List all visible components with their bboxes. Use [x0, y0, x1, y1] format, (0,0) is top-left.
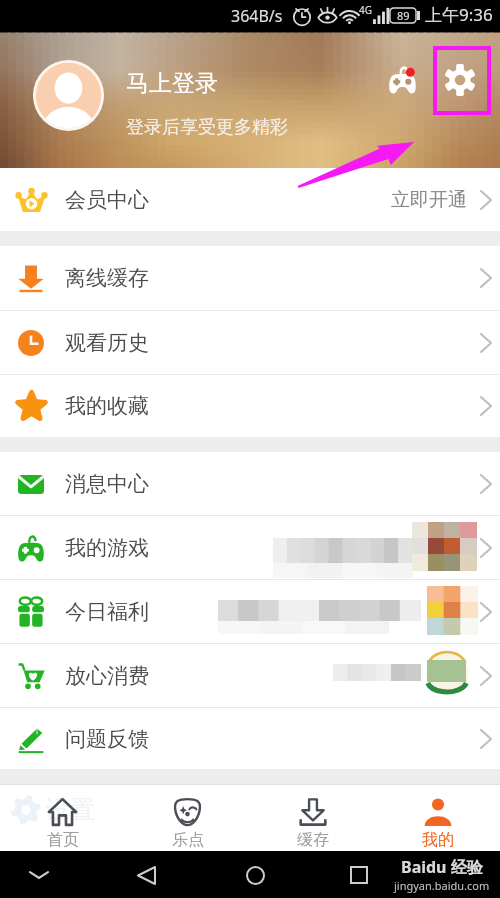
- button[interactable]: 我的收藏: [0, 375, 500, 437]
- staticText: 观看历史: [65, 330, 149, 356]
- staticText: 今日福利: [65, 599, 149, 625]
- button[interactable]: 今日福利: [0, 580, 500, 643]
- staticText: 离线缓存: [65, 265, 149, 291]
- staticText: 上午9:36: [425, 3, 493, 26]
- staticText: Baidu 经验: [401, 856, 483, 878]
- button[interactable]: Games: [378, 55, 426, 103]
- staticText: 我的游戏: [65, 535, 149, 561]
- staticText: 乐点: [172, 830, 204, 850]
- button[interactable]: Hide keyboard: [24, 860, 54, 890]
- staticText: 登录后享受更多精彩: [126, 116, 288, 139]
- button[interactable]: 放心消费: [0, 644, 500, 707]
- staticText: 我的收藏: [65, 393, 149, 419]
- button[interactable]: 会员中心: [0, 168, 500, 231]
- button[interactable]: 首页: [0, 784, 125, 851]
- staticText: 4G: [359, 3, 372, 17]
- button[interactable]: 离线缓存: [0, 246, 500, 310]
- button[interactable]: 乐点: [125, 784, 250, 851]
- staticText: 364B/s: [231, 5, 283, 27]
- button[interactable]: 缓存: [250, 784, 375, 851]
- staticText: 首页: [47, 830, 79, 850]
- staticText: 问题反馈: [65, 726, 149, 752]
- staticText: 消息中心: [65, 471, 149, 497]
- button[interactable]: Home: [238, 858, 272, 892]
- staticText: 缓存: [297, 830, 329, 850]
- button[interactable]: 我的游戏: [0, 516, 500, 579]
- button[interactable]: Back: [129, 858, 163, 892]
- staticText: 会员中心: [65, 187, 149, 213]
- staticText: 立即开通: [391, 188, 467, 212]
- staticText: 设置: [45, 794, 95, 825]
- button[interactable]: 观看历史: [0, 311, 500, 374]
- staticText: 放心消费: [65, 663, 149, 689]
- staticText: 我的: [422, 830, 454, 850]
- staticText: jingyan.baidu.com: [394, 878, 490, 893]
- staticText: 89: [397, 8, 410, 23]
- button[interactable]: 问题反馈: [0, 708, 500, 769]
- button[interactable]: Settings: [437, 57, 483, 103]
- button[interactable]: 消息中心: [0, 452, 500, 515]
- button[interactable]: 我的: [375, 784, 500, 851]
- button[interactable]: Recents: [342, 858, 376, 892]
- staticText: 马上登录: [126, 69, 218, 98]
